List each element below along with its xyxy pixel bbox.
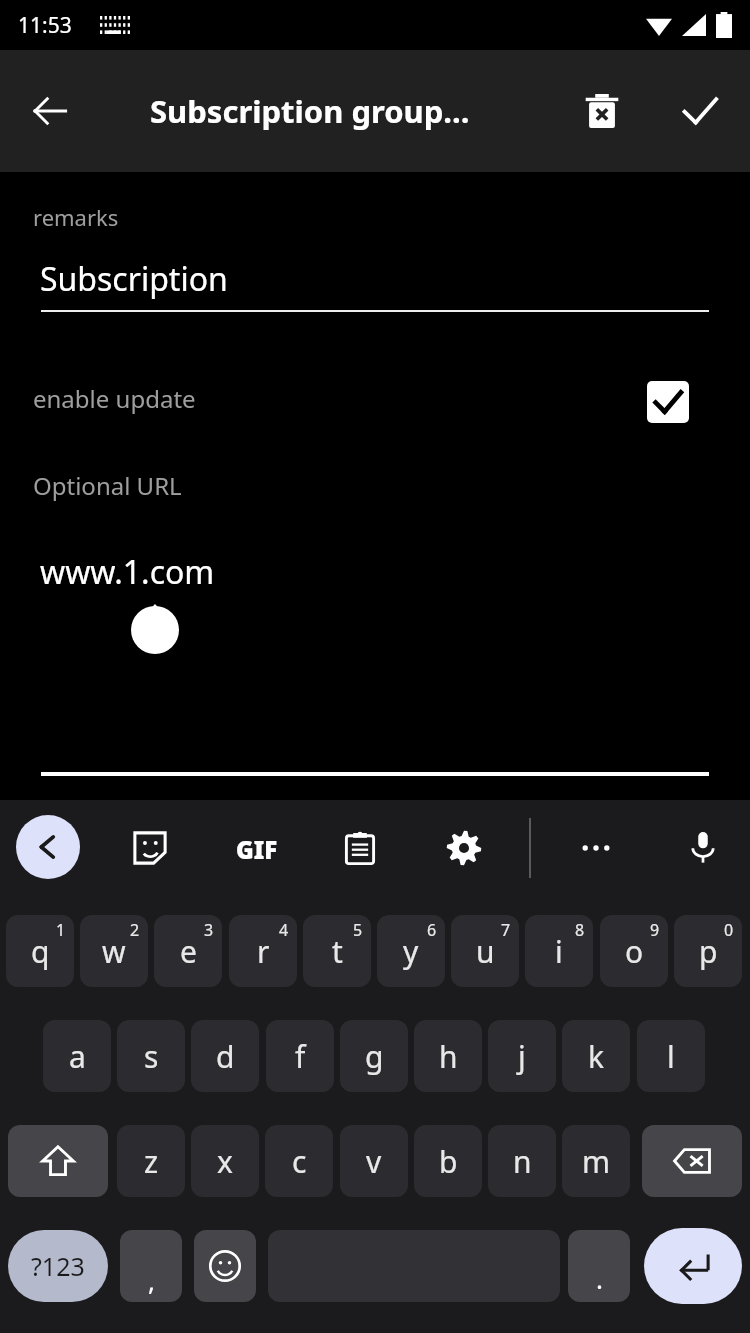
- staticText: k: [588, 1036, 605, 1077]
- staticText: z: [144, 1141, 159, 1182]
- button[interactable]: Settings: [435, 819, 493, 877]
- button[interactable]: Voice input: [673, 817, 733, 877]
- staticText: remarks: [33, 202, 119, 232]
- button[interactable]: x: [191, 1125, 259, 1197]
- button[interactable]: ?123: [8, 1230, 108, 1302]
- button[interactable]: s: [117, 1020, 185, 1092]
- staticText: 6: [427, 919, 437, 941]
- button[interactable]: Stickers: [121, 819, 179, 877]
- button[interactable]: a: [43, 1020, 111, 1092]
- button[interactable]: i: [525, 915, 593, 987]
- button[interactable]: f: [266, 1020, 334, 1092]
- button[interactable]: Comma: [120, 1230, 182, 1302]
- button[interactable]: g: [340, 1020, 408, 1092]
- button[interactable]: w: [80, 915, 148, 987]
- staticText: 1: [56, 919, 66, 941]
- staticText: w: [102, 931, 126, 972]
- button[interactable]: Back: [18, 79, 82, 143]
- button[interactable]: h: [414, 1020, 482, 1092]
- staticText: 11:53: [18, 11, 72, 40]
- staticText: 7: [501, 919, 511, 941]
- staticText: i: [555, 931, 563, 972]
- staticText: ?123: [31, 1249, 85, 1283]
- button[interactable]: Emoji: [194, 1230, 256, 1302]
- button[interactable]: c: [265, 1125, 333, 1197]
- button[interactable]: Back: [16, 815, 80, 879]
- staticText: ,: [148, 1263, 155, 1298]
- staticText: 5: [353, 919, 363, 941]
- staticText: v: [366, 1141, 382, 1182]
- staticText: m: [582, 1141, 611, 1182]
- button[interactable]: j: [488, 1020, 556, 1092]
- staticText: l: [667, 1036, 675, 1077]
- staticText: c: [292, 1141, 307, 1182]
- button[interactable]: More options: [567, 819, 625, 877]
- button[interactable]: Save: [664, 75, 736, 147]
- button[interactable]: GIF: [227, 819, 287, 879]
- staticText: s: [144, 1036, 159, 1077]
- staticText: 4: [279, 919, 289, 941]
- staticText: t: [332, 931, 343, 972]
- button[interactable]: o: [600, 915, 668, 987]
- button[interactable]: n: [488, 1125, 556, 1197]
- staticText: y: [403, 931, 419, 972]
- button[interactable]: l: [637, 1020, 705, 1092]
- staticText: 2: [130, 919, 140, 941]
- staticText: Optional URL: [33, 469, 182, 502]
- staticText: enable update: [33, 382, 196, 415]
- button[interactable]: Shift: [8, 1125, 108, 1197]
- staticText: j: [518, 1036, 526, 1077]
- staticText: d: [216, 1036, 235, 1077]
- button[interactable]: Backspace: [642, 1125, 742, 1197]
- staticText: x: [217, 1141, 233, 1182]
- staticText: b: [439, 1141, 458, 1182]
- button[interactable]: q: [6, 915, 74, 987]
- button[interactable]: Enter: [644, 1228, 742, 1304]
- staticText: 9: [650, 919, 660, 941]
- staticText: www.1.com: [40, 550, 215, 594]
- staticText: q: [31, 931, 50, 972]
- staticText: u: [476, 931, 495, 972]
- button[interactable]: b: [414, 1125, 482, 1197]
- staticText: 0: [724, 919, 734, 941]
- button[interactable]: t: [303, 915, 371, 987]
- staticText: h: [439, 1036, 458, 1077]
- staticText: a: [69, 1036, 86, 1077]
- button[interactable]: m: [562, 1125, 630, 1197]
- button[interactable]: Delete: [566, 75, 638, 147]
- button[interactable]: r: [229, 915, 297, 987]
- button[interactable]: u: [451, 915, 519, 987]
- button[interactable]: e: [154, 915, 222, 987]
- staticText: Subscription: [40, 257, 228, 301]
- button[interactable]: Clipboard: [331, 819, 389, 877]
- staticText: g: [365, 1036, 384, 1077]
- button[interactable]: enable update checkbox: [638, 372, 698, 432]
- button[interactable]: z: [117, 1125, 185, 1197]
- staticText: e: [180, 931, 197, 972]
- button[interactable]: v: [340, 1125, 408, 1197]
- staticText: .: [596, 1261, 603, 1296]
- staticText: p: [699, 931, 718, 972]
- staticText: n: [513, 1141, 532, 1182]
- staticText: o: [625, 931, 644, 972]
- staticText: Subscription group...: [150, 90, 470, 132]
- button[interactable]: y: [377, 915, 445, 987]
- button[interactable]: k: [562, 1020, 630, 1092]
- button[interactable]: p: [674, 915, 742, 987]
- staticText: r: [257, 931, 270, 972]
- staticText: GIF: [236, 833, 278, 866]
- button[interactable]: Period: [568, 1230, 630, 1302]
- button[interactable]: d: [191, 1020, 259, 1092]
- staticText: 8: [575, 919, 585, 941]
- staticText: 3: [204, 919, 214, 941]
- staticText: f: [295, 1036, 306, 1077]
